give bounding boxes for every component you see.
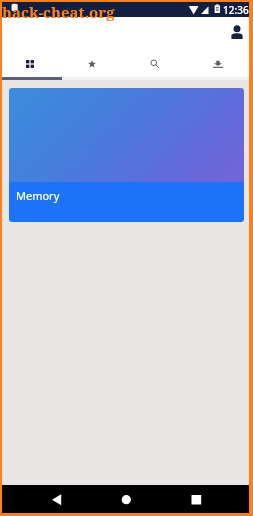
button[interactable]: Back [43, 490, 69, 508]
button[interactable]: Grid [0, 50, 61, 77]
button[interactable]: Home [113, 490, 139, 508]
button[interactable]: Account [224, 19, 250, 45]
button[interactable]: Memory [9, 88, 244, 222]
button[interactable]: Search [123, 50, 186, 77]
button[interactable]: Downloads [186, 50, 249, 77]
button[interactable]: Favorites [61, 50, 123, 77]
button[interactable]: Recents [183, 490, 209, 508]
staticText: 12:36 [223, 3, 249, 17]
staticText: Memory [16, 188, 60, 203]
staticText: hack-cheat.org [2, 2, 115, 22]
